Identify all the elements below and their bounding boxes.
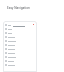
button[interactable]: Menu item 7: [3, 51, 37, 55]
button[interactable]: Menu item 2: [3, 31, 37, 35]
button[interactable]: Menu item 4: [3, 39, 37, 43]
button[interactable]: Menu item 3: [3, 35, 37, 39]
button[interactable]: Menu item 10: [3, 63, 37, 67]
button[interactable]: Menu item 8: [3, 55, 37, 59]
button[interactable]: Menu item 0: [3, 23, 37, 27]
button[interactable]: Menu item 1: [3, 27, 37, 31]
staticText: Easy Navigation: [7, 6, 30, 10]
button[interactable]: Menu item 9: [3, 59, 37, 63]
button[interactable]: Menu item 5: [3, 43, 37, 47]
button[interactable]: Menu item 6: [3, 47, 37, 51]
